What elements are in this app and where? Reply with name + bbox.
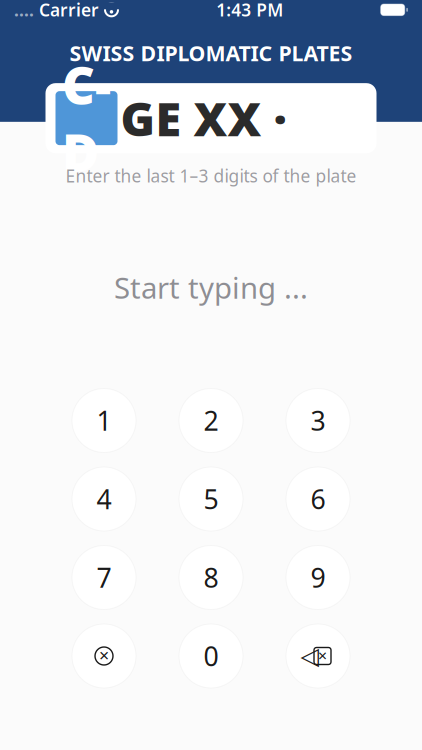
button[interactable]: Clear: [72, 624, 136, 688]
button[interactable]: 0: [179, 624, 243, 688]
button[interactable]: 8: [179, 545, 243, 609]
button[interactable]: 4: [72, 467, 136, 531]
staticText: 3: [310, 403, 325, 438]
button[interactable]: 3: [286, 388, 350, 452]
staticText: 6: [310, 481, 325, 517]
staticText: 7: [96, 560, 111, 595]
staticText: ◁: [300, 642, 318, 670]
staticText: 1:43 PM: [216, 0, 283, 21]
staticText: 4: [96, 481, 111, 517]
staticText: ✕: [317, 649, 327, 663]
staticText: 8: [203, 560, 218, 595]
staticText: CD: [62, 51, 111, 185]
staticText: 2: [203, 403, 218, 438]
staticText: 0: [203, 638, 218, 674]
button[interactable]: 6: [286, 467, 350, 531]
staticText: 5: [203, 481, 218, 517]
button[interactable]: Delete: [286, 624, 350, 688]
staticText: 1: [96, 403, 111, 438]
staticText: SWISS DIPLOMATIC PLATES: [69, 39, 352, 67]
staticText: Enter the last 1–3 digits of the plate: [65, 164, 356, 187]
staticText: ....: [14, 0, 34, 21]
button[interactable]: 1: [72, 388, 136, 452]
button[interactable]: 7: [72, 545, 136, 609]
button[interactable]: 9: [286, 545, 350, 609]
button[interactable]: 5: [179, 467, 243, 531]
staticText: 9: [310, 560, 325, 595]
button[interactable]: 2: [179, 388, 243, 452]
staticText: Start typing ...: [114, 268, 308, 307]
staticText: ✕: [98, 648, 109, 663]
staticText: GE XX ·: [120, 87, 286, 149]
staticText: Carrier: [39, 0, 99, 21]
